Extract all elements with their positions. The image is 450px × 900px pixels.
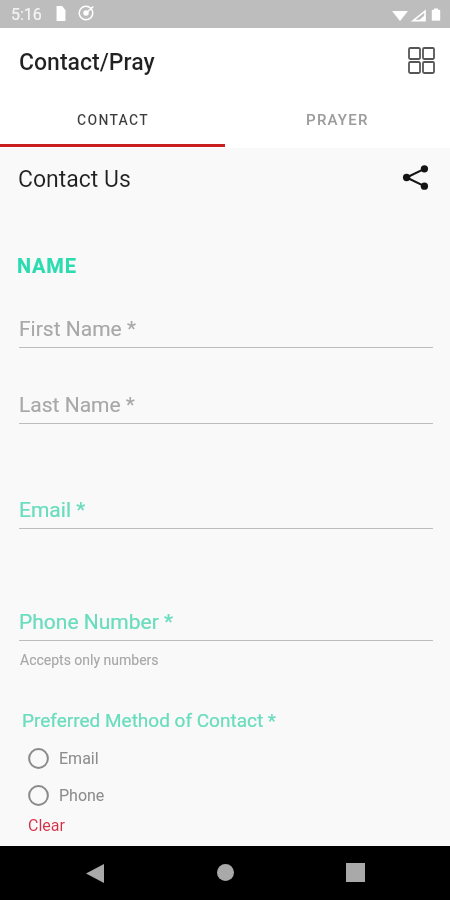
button[interactable]: Clear [28,816,65,835]
staticText: PRAYER [306,111,369,129]
staticText: Accepts only numbers [20,652,159,668]
button[interactable]: Last Name * [19,387,433,424]
button[interactable]: Share [394,156,436,198]
staticText: Phone Number * [19,610,174,635]
button[interactable]: Phone Number * [19,604,433,641]
staticText: 5:16 [11,5,42,24]
staticText: First Name * [19,317,136,342]
button[interactable]: PRAYER [225,96,450,144]
button[interactable]: CONTACT [0,96,225,144]
staticText: CONTACT [77,112,149,128]
staticText: Contact/Pray [19,49,155,76]
staticText: Email [59,749,99,768]
staticText: Last Name * [19,393,135,418]
button[interactable]: Email [20,740,220,776]
button[interactable]: First Name * [19,311,433,348]
staticText: NAME [17,254,77,277]
button[interactable]: Dashboard [396,35,444,83]
staticText: Preferred Method of Contact * [22,709,277,731]
staticText: Contact Us [18,166,131,193]
button[interactable]: Phone [20,777,220,813]
button[interactable]: Email * [19,492,433,529]
staticText: Phone [59,786,105,805]
staticText: Email * [19,498,86,523]
